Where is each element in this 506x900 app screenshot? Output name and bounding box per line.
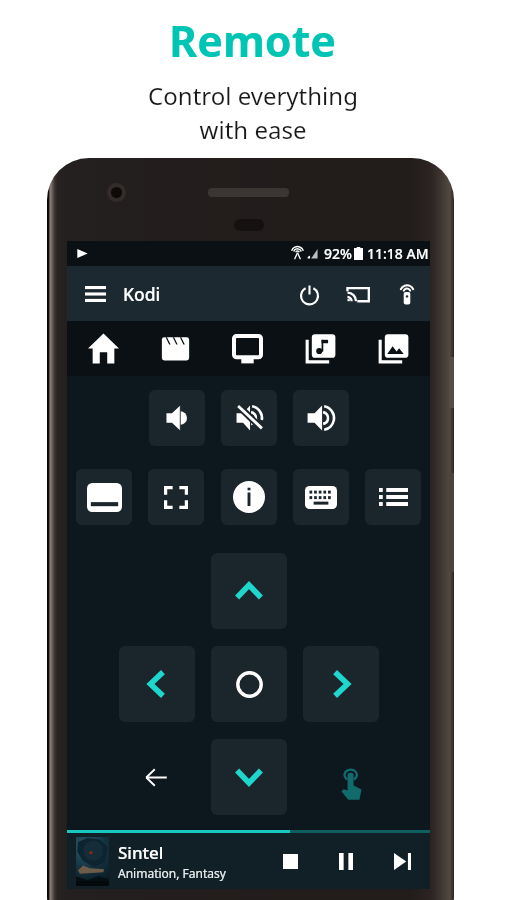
button[interactable]: Volume up (293, 390, 349, 446)
button[interactable]: Info (221, 469, 277, 525)
button[interactable]: Home (67, 321, 139, 376)
button[interactable]: Left (119, 646, 195, 722)
button[interactable]: Fullscreen (148, 469, 204, 525)
button[interactable]: Back (133, 754, 179, 800)
button[interactable]: Menu (72, 271, 118, 317)
button[interactable]: Touchpad (329, 761, 375, 807)
button[interactable]: Down (211, 739, 287, 815)
staticText: Kodi (123, 282, 161, 306)
button[interactable]: Up (211, 553, 287, 629)
button[interactable]: Remote control (384, 271, 430, 317)
button[interactable]: Subtitles (76, 469, 132, 525)
button[interactable]: Pause (324, 839, 368, 883)
button[interactable]: Next (380, 839, 424, 883)
staticText: Remote (169, 11, 337, 70)
staticText: Control everything with ease (148, 79, 358, 146)
button[interactable]: Movies (139, 321, 211, 376)
staticText: Sintel (118, 841, 164, 864)
staticText: 92% (324, 244, 352, 263)
staticText: Animation, Fantasy (118, 865, 226, 881)
button[interactable]: Right (303, 646, 379, 722)
button[interactable]: Mute (221, 390, 277, 446)
button[interactable]: Stop (268, 839, 312, 883)
button[interactable]: TV Shows (211, 321, 284, 376)
button[interactable]: Pictures (357, 321, 430, 376)
button[interactable]: Keyboard (293, 469, 349, 525)
button[interactable]: Music (284, 321, 357, 376)
staticText: 11:18 AM (367, 244, 429, 263)
button[interactable]: Cast (335, 271, 381, 317)
button[interactable]: Volume down (149, 390, 205, 446)
button[interactable]: Select (211, 646, 287, 722)
button[interactable]: Playlist (365, 469, 421, 525)
button[interactable]: Power (286, 271, 332, 317)
